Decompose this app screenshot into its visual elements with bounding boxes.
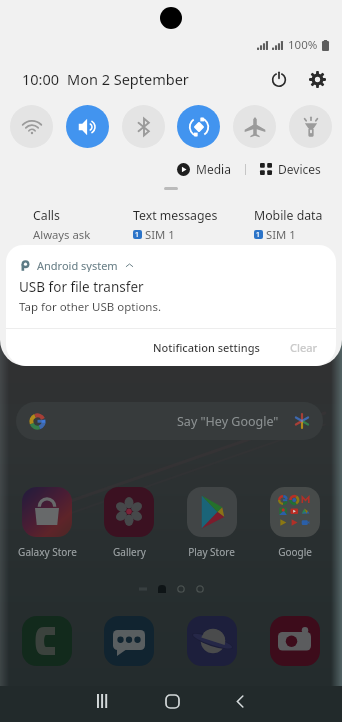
staticText: Media (196, 161, 231, 177)
button[interactable]: Sound (66, 105, 109, 148)
staticText: SIM 1 (145, 227, 175, 242)
button[interactable]: Text messages (133, 207, 218, 242)
button[interactable]: Recents (69, 686, 138, 716)
button[interactable]: Home (138, 686, 206, 716)
button[interactable]: Devices (257, 159, 324, 179)
button[interactable]: Mobile data (254, 207, 323, 242)
staticText: Mobile data (254, 207, 323, 224)
staticText: Google (278, 545, 312, 559)
staticText: Mon 2 September (67, 69, 189, 89)
button[interactable]: Wi-Fi (10, 105, 53, 148)
staticText: Tap for other USB options. (19, 299, 162, 315)
button[interactable]: Galaxy Store (6, 487, 88, 559)
staticText: 10:00 (22, 69, 60, 89)
button[interactable]: Google (253, 487, 336, 559)
button[interactable]: Bluetooth (122, 105, 165, 148)
button[interactable]: Gallery (88, 487, 170, 559)
button[interactable]: Internet (170, 616, 253, 666)
staticText: SIM 1 (266, 227, 296, 242)
staticText: Devices (278, 161, 321, 177)
button[interactable]: Phone (6, 616, 88, 666)
staticText: Play Store (188, 545, 235, 559)
button[interactable]: Settings (304, 68, 330, 90)
staticText: Text messages (133, 207, 218, 224)
button[interactable]: Media (174, 159, 234, 179)
staticText: Calls (33, 207, 60, 224)
button[interactable]: Airplane mode (233, 105, 276, 148)
staticText: Always ask (33, 227, 91, 242)
button[interactable]: Messages (88, 616, 170, 666)
staticText: 1 (256, 230, 261, 239)
staticText: 1 (135, 230, 140, 239)
button[interactable]: Say "Hey Google" (16, 402, 323, 440)
staticText: Gallery (113, 545, 146, 559)
button[interactable]: Flashlight (289, 105, 332, 148)
staticText: Galaxy Store (18, 545, 77, 559)
button[interactable]: Play Store (170, 487, 253, 559)
button[interactable]: Back (206, 686, 274, 716)
button[interactable]: Auto rotate (177, 105, 220, 148)
button[interactable]: Camera (253, 616, 336, 666)
button[interactable]: Clear (288, 335, 320, 360)
button[interactable]: Notification settings (151, 335, 262, 360)
button[interactable]: Calls (33, 207, 91, 242)
staticText: USB for file transfer (19, 278, 144, 296)
staticText: 100% (288, 37, 318, 53)
button[interactable]: Power (266, 68, 292, 90)
staticText: Say "Hey Google" (177, 413, 279, 430)
staticText: Android system (37, 258, 118, 272)
